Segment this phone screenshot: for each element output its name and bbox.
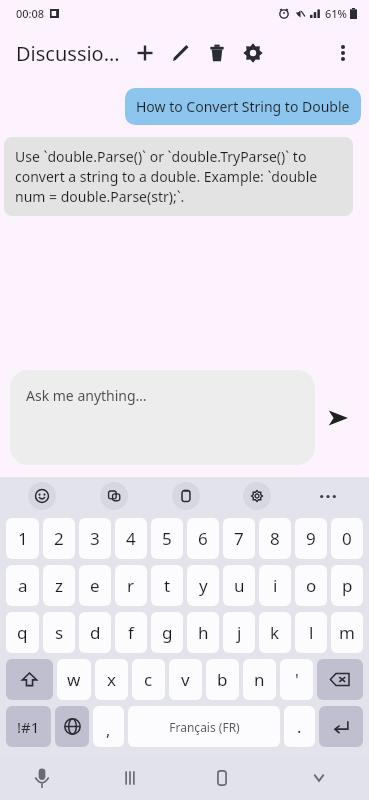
button[interactable]: Change language bbox=[55, 706, 89, 747]
button[interactable]: Voice input bbox=[0, 756, 84, 800]
button[interactable]: a bbox=[6, 565, 39, 606]
button[interactable]: Send bbox=[315, 395, 361, 441]
button[interactable]: v bbox=[169, 659, 202, 700]
button[interactable]: Enter bbox=[319, 706, 363, 747]
button[interactable]: 9 bbox=[295, 518, 327, 559]
staticText: z bbox=[55, 574, 63, 597]
staticText: w bbox=[67, 668, 81, 691]
staticText: f bbox=[128, 621, 134, 644]
button[interactable]: q bbox=[6, 612, 39, 653]
button[interactable]: Delete bbox=[206, 42, 228, 64]
button[interactable]: Clipboard bbox=[150, 477, 221, 515]
button[interactable]: Backspace bbox=[317, 659, 363, 700]
staticText: b bbox=[217, 668, 228, 691]
button[interactable]: Ask me anything… bbox=[10, 370, 315, 465]
button[interactable]: g bbox=[151, 612, 183, 653]
button[interactable]: Use `double.Parse()` or `double.TryParse… bbox=[4, 137, 353, 216]
button[interactable]: u bbox=[223, 565, 255, 606]
staticText: Français (FR) bbox=[169, 719, 240, 735]
button[interactable]: Add bbox=[134, 42, 156, 64]
button[interactable]: !#1 bbox=[6, 706, 51, 747]
button[interactable]: 1 bbox=[6, 518, 39, 559]
staticText: 7 bbox=[234, 527, 244, 550]
button[interactable]: 6 bbox=[187, 518, 219, 559]
button[interactable]: p bbox=[331, 565, 363, 606]
button[interactable]: l bbox=[295, 612, 327, 653]
staticText: . bbox=[297, 716, 302, 738]
staticText: 61% bbox=[325, 6, 347, 21]
button[interactable]: y bbox=[187, 565, 219, 606]
button[interactable]: x bbox=[95, 659, 128, 700]
button[interactable]: f bbox=[115, 612, 147, 653]
button[interactable]: e bbox=[79, 565, 111, 606]
staticText: y bbox=[199, 574, 208, 597]
staticText: p bbox=[342, 574, 353, 597]
button[interactable]: More bbox=[292, 477, 363, 515]
button[interactable]: Hide keyboard bbox=[268, 756, 369, 800]
staticText: n bbox=[254, 668, 265, 691]
button[interactable]: r bbox=[115, 565, 147, 606]
staticText: 1 bbox=[18, 527, 28, 550]
button[interactable]: 7 bbox=[223, 518, 255, 559]
staticText: 0 bbox=[342, 527, 352, 550]
button[interactable]: 8 bbox=[259, 518, 291, 559]
staticText: 2 bbox=[54, 527, 64, 550]
button[interactable]: Settings bbox=[242, 42, 264, 64]
button[interactable]: Translate bbox=[78, 477, 150, 515]
button[interactable]: d bbox=[79, 612, 111, 653]
staticText: j bbox=[237, 621, 242, 644]
staticText: o bbox=[306, 574, 317, 597]
button[interactable]: s bbox=[43, 612, 75, 653]
button[interactable]: w bbox=[57, 659, 91, 700]
button[interactable]: . bbox=[284, 706, 315, 747]
button[interactable]: Keyboard settings bbox=[221, 477, 292, 515]
staticText: a bbox=[18, 574, 28, 597]
button[interactable]: Shift bbox=[6, 659, 53, 700]
button[interactable]: h bbox=[187, 612, 219, 653]
staticText: 00:08 bbox=[16, 6, 45, 21]
button[interactable]: Emoji bbox=[6, 477, 78, 515]
button[interactable]: More options bbox=[333, 43, 353, 63]
staticText: g bbox=[162, 621, 173, 644]
staticText: 6 bbox=[198, 527, 208, 550]
button[interactable]: 3 bbox=[79, 518, 111, 559]
button[interactable]: Français (FR) bbox=[128, 706, 280, 747]
button[interactable]: i bbox=[259, 565, 291, 606]
button[interactable]: , bbox=[93, 706, 124, 747]
button[interactable]: ' bbox=[280, 659, 313, 700]
staticText: u bbox=[234, 574, 245, 597]
button[interactable]: 0 bbox=[331, 518, 363, 559]
staticText: m bbox=[339, 621, 355, 644]
button[interactable]: Recents bbox=[84, 756, 176, 800]
button[interactable]: t bbox=[151, 565, 183, 606]
staticText: ' bbox=[295, 668, 299, 691]
staticText: d bbox=[90, 621, 101, 644]
button[interactable]: Edit bbox=[170, 42, 192, 64]
button[interactable]: b bbox=[206, 659, 239, 700]
staticText: r bbox=[127, 574, 135, 597]
staticText: c bbox=[144, 668, 153, 691]
button[interactable]: k bbox=[259, 612, 291, 653]
button[interactable]: n bbox=[243, 659, 276, 700]
staticText: q bbox=[17, 621, 28, 644]
button[interactable]: z bbox=[43, 565, 75, 606]
staticText: How to Convert String to Double bbox=[136, 97, 350, 116]
staticText: Ask me anything… bbox=[26, 386, 147, 405]
staticText: e bbox=[90, 574, 100, 597]
staticText: k bbox=[270, 621, 280, 644]
staticText: l bbox=[309, 621, 314, 644]
button[interactable]: 4 bbox=[115, 518, 147, 559]
staticText: 3 bbox=[90, 527, 100, 550]
button[interactable]: How to Convert String to Double bbox=[125, 88, 361, 125]
staticText: 5 bbox=[162, 527, 172, 550]
button[interactable]: Home bbox=[176, 756, 268, 800]
staticText: i bbox=[273, 574, 278, 597]
button[interactable]: o bbox=[295, 565, 327, 606]
button[interactable]: 5 bbox=[151, 518, 183, 559]
button[interactable]: 2 bbox=[43, 518, 75, 559]
staticText: s bbox=[55, 621, 64, 644]
button[interactable]: m bbox=[331, 612, 363, 653]
button[interactable]: j bbox=[223, 612, 255, 653]
button[interactable]: c bbox=[132, 659, 165, 700]
staticText: 8 bbox=[270, 527, 280, 550]
